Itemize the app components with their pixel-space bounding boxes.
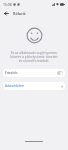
button[interactable]: Értesítés — [3, 69, 65, 77]
button[interactable]: Back — [2, 9, 11, 18]
staticText: Értesítés — [5, 71, 18, 75]
staticText: Adatvédelem — [5, 84, 25, 88]
button[interactable]: Adatvédelem — [3, 82, 65, 90]
staticText: Ez az alkalmazás segít nyomon követni a … — [9, 51, 59, 63]
staticText: 15:08 — [3, 2, 12, 7]
staticText: Rólunk — [13, 11, 26, 16]
